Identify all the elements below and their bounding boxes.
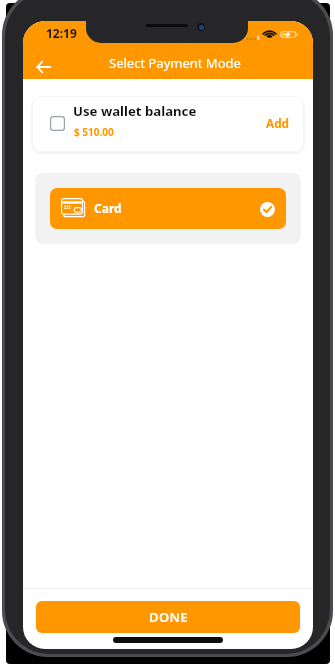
button[interactable]: Add (261, 110, 295, 136)
staticText: Card (94, 200, 122, 216)
staticText: Use wallet balance (73, 102, 197, 120)
staticText: Select Payment Mode (109, 54, 241, 72)
button[interactable]: Use wallet balance (33, 97, 303, 151)
staticText: 12:19 (46, 25, 77, 41)
button[interactable]: DONE (36, 601, 300, 633)
staticText: Add (266, 115, 290, 131)
staticText: DONE (149, 608, 188, 626)
staticText: $ 510.00 (74, 125, 114, 139)
button[interactable]: Card (50, 188, 286, 229)
button[interactable]: Back (28, 52, 58, 82)
